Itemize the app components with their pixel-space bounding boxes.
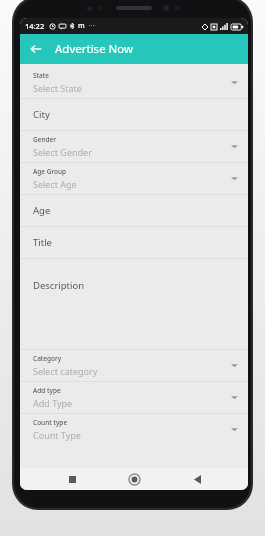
- staticText: 14:22: [25, 21, 45, 31]
- staticText: Count type: [33, 418, 68, 427]
- staticText: City: [33, 108, 50, 121]
- staticText: ⋯: [88, 22, 95, 30]
- button[interactable]: Gender: [20, 131, 248, 162]
- button[interactable]: City: [20, 99, 248, 130]
- staticText: Select Gender: [33, 146, 92, 158]
- button[interactable]: Home: [123, 468, 145, 490]
- staticText: Select Age: [33, 178, 77, 190]
- button[interactable]: Add type: [20, 382, 248, 413]
- button[interactable]: Recent apps: [61, 468, 83, 490]
- staticText: Select State: [33, 82, 82, 94]
- button[interactable]: State: [20, 67, 248, 98]
- button[interactable]: Age Group: [20, 163, 248, 194]
- button[interactable]: Count type: [20, 414, 248, 445]
- staticText: Description: [33, 279, 85, 292]
- button[interactable]: Description: [20, 259, 248, 349]
- staticText: Count Type: [33, 429, 81, 441]
- button[interactable]: Age: [20, 195, 248, 226]
- staticText: State: [33, 71, 50, 80]
- staticText: Add Type: [33, 397, 73, 409]
- staticText: Age: [33, 204, 51, 217]
- staticText: Gender: [33, 135, 57, 144]
- staticText: Select category: [33, 365, 98, 377]
- button[interactable]: Back: [186, 468, 208, 490]
- button[interactable]: Back: [24, 37, 48, 61]
- staticText: Add type: [33, 386, 61, 395]
- button[interactable]: Title: [20, 227, 248, 258]
- staticText: m: [78, 21, 85, 31]
- staticText: Advertise Now: [55, 41, 134, 57]
- staticText: Age Group: [33, 167, 67, 176]
- button[interactable]: Category: [20, 350, 248, 381]
- staticText: Category: [33, 354, 62, 363]
- staticText: Title: [33, 236, 52, 249]
